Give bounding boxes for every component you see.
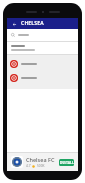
staticText: INSTALL [60,160,74,165]
button[interactable]: INSTALL [59,159,74,166]
staticText: Chelsea FC [26,156,55,163]
button[interactable] [7,42,78,54]
button[interactable] [7,58,78,70]
staticText: CHELSEA [21,20,44,27]
button[interactable] [7,72,78,84]
button[interactable] [7,29,78,41]
staticText: 4.7 [26,164,31,168]
staticText: 500K [37,164,45,168]
button[interactable]: Back [10,20,18,28]
